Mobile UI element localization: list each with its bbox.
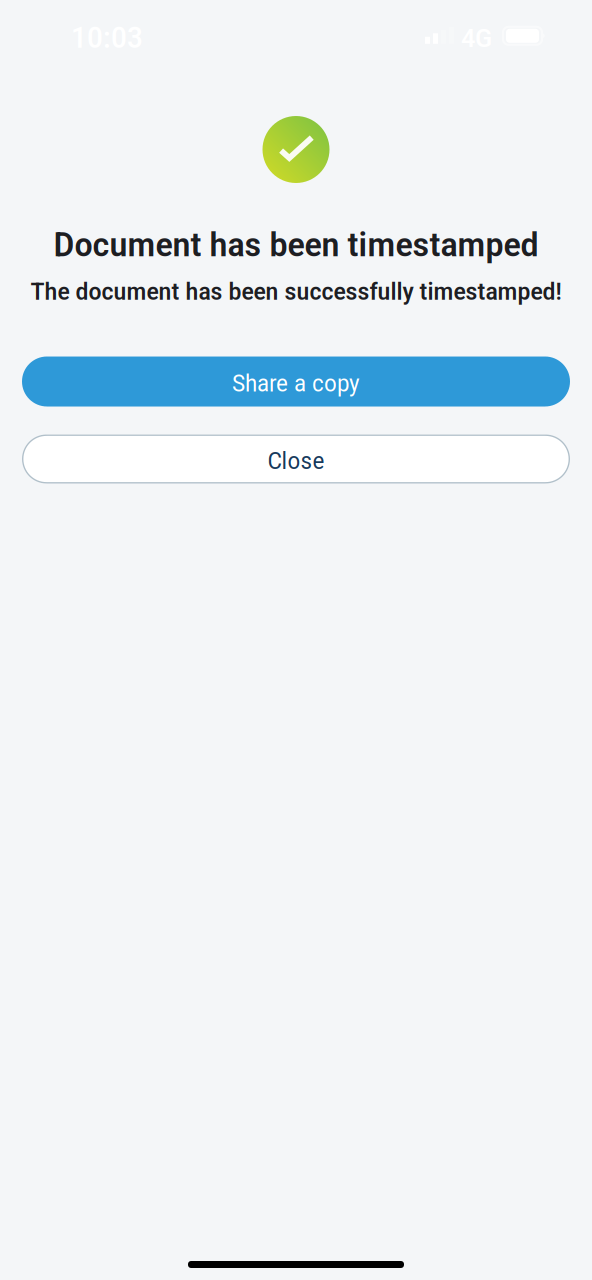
staticText: Share a copy bbox=[232, 370, 360, 397]
staticText: Close bbox=[267, 447, 324, 475]
button[interactable]: Close bbox=[22, 434, 570, 483]
staticText: The document has been successfully times… bbox=[30, 277, 561, 305]
staticText: 10:03 bbox=[71, 21, 143, 55]
staticText: 4G bbox=[461, 22, 492, 53]
staticText: Document has been timestamped bbox=[53, 225, 538, 264]
button[interactable]: Share a copy bbox=[22, 356, 570, 406]
